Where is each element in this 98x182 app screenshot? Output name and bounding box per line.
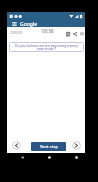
button[interactable]: Home	[45, 153, 53, 161]
button[interactable]: Next	[72, 141, 81, 150]
staticText: 2020/09	[10, 31, 23, 35]
button[interactable]: Previous	[12, 141, 21, 150]
button[interactable]: Back	[18, 153, 26, 161]
staticText: Google	[20, 21, 38, 27]
staticText: Do you believe we are expecting money no…	[13, 43, 80, 51]
button[interactable]: Menu	[11, 21, 17, 27]
button[interactable]: Recents	[72, 153, 80, 161]
button[interactable]: Favorite	[78, 30, 85, 37]
button[interactable]: Next step	[31, 142, 66, 151]
button[interactable]: Do you believe we are expecting money no…	[9, 42, 84, 52]
button[interactable]: Share	[71, 30, 78, 37]
staticText: Next step	[40, 144, 58, 149]
staticText: 00:58	[42, 28, 54, 34]
button[interactable]: Copy	[64, 30, 71, 37]
